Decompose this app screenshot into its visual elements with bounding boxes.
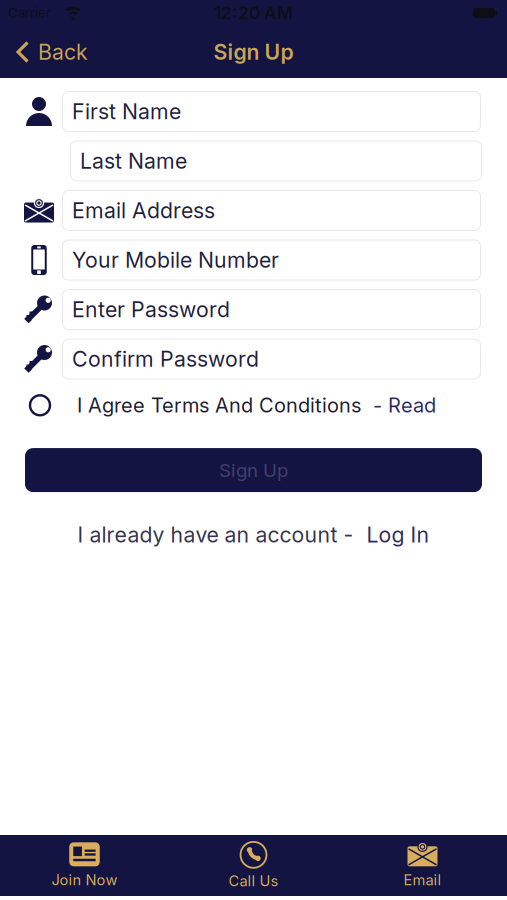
staticText: Your Mobile Number — [72, 247, 279, 273]
button[interactable]: Confirm Password — [62, 338, 481, 379]
button[interactable]: Agree to terms — [30, 395, 50, 415]
staticText: Email — [403, 871, 441, 889]
staticText: I Agree Terms And Conditions — [77, 393, 361, 417]
button[interactable]: Call Us — [169, 835, 338, 896]
staticText: - Read — [373, 393, 436, 417]
button[interactable]: Email Address — [62, 190, 481, 231]
button[interactable]: Back — [0, 39, 88, 65]
button[interactable]: Your Mobile Number — [62, 239, 481, 280]
button[interactable]: Sign Up — [25, 448, 482, 492]
staticText: Call Us — [228, 872, 278, 890]
button[interactable]: Email — [338, 835, 507, 896]
staticText: Email Address — [72, 198, 215, 223]
button[interactable]: Join Now — [0, 835, 169, 896]
button[interactable]: Log In — [366, 522, 429, 547]
staticText: First Name — [72, 99, 181, 124]
button[interactable]: Enter Password — [62, 289, 481, 330]
staticText: Back — [38, 39, 88, 65]
staticText: Carrier — [8, 5, 51, 21]
staticText: Enter Password — [72, 297, 230, 322]
staticText: Sign Up — [213, 39, 293, 65]
staticText: Log In — [366, 522, 429, 547]
staticText: Join Now — [51, 871, 117, 889]
staticText: Confirm Password — [72, 346, 259, 372]
button[interactable]: First Name — [62, 91, 481, 132]
staticText: I already have an account - — [77, 522, 353, 547]
button[interactable]: - Read — [373, 393, 436, 417]
staticText: Sign Up — [219, 459, 288, 481]
staticText: Last Name — [80, 148, 187, 174]
staticText: 12:20 AM — [214, 3, 293, 23]
button[interactable]: Last Name — [70, 140, 482, 181]
